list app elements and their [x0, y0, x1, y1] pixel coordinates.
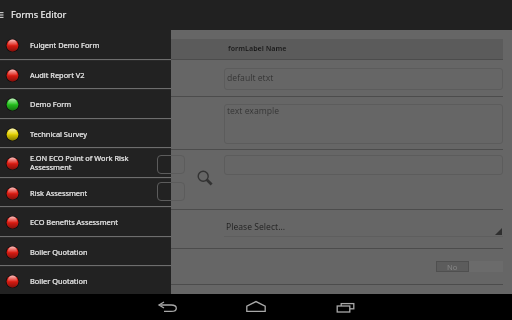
- staticText: default etxt: [227, 72, 274, 84]
- staticText: text example: [227, 105, 280, 117]
- button[interactable]: Technical Survey: [0, 119, 171, 149]
- button[interactable]: [224, 155, 503, 175]
- button[interactable]: Boiler Quotation: [0, 237, 171, 267]
- staticText: Audit Report V2: [30, 70, 85, 80]
- staticText: ECO Benefits Assessment: [30, 217, 118, 227]
- staticText: Fulgent Demo Form: [30, 40, 100, 50]
- staticText: No: [447, 262, 458, 272]
- button[interactable]: ECO Benefits Assessment: [0, 207, 171, 237]
- staticText: Boiler Quotation: [30, 247, 88, 257]
- staticText: Demo Form: [30, 99, 72, 109]
- button[interactable]: Home: [214, 294, 298, 320]
- staticText: formLabel Name: [228, 44, 287, 54]
- button[interactable]: Back: [124, 294, 208, 320]
- staticText: Boiler Quotation: [30, 276, 88, 286]
- button[interactable]: Recent apps: [304, 294, 388, 320]
- staticText: Please Select...: [226, 221, 286, 233]
- staticText: Technical Survey: [30, 129, 88, 139]
- button[interactable]: Risk Assessment: [0, 178, 171, 208]
- button[interactable]: Demo Form: [0, 89, 171, 119]
- button[interactable]: Boiler Quotation: [0, 266, 171, 296]
- button[interactable]: Search: [195, 167, 214, 186]
- button[interactable]: text example: [224, 104, 503, 144]
- button[interactable]: Please Select...: [224, 215, 503, 237]
- button[interactable]: No: [436, 261, 503, 272]
- button[interactable]: Audit Report V2: [0, 60, 171, 90]
- button[interactable]: Fulgent Demo Form: [0, 30, 171, 60]
- button[interactable]: default etxt: [224, 68, 503, 90]
- staticText: Risk Assessment: [30, 188, 88, 198]
- button[interactable]: E.ON ECO Point of Work Risk Assessment: [0, 148, 171, 178]
- staticText: Forms Editor: [11, 8, 67, 21]
- staticText: E.ON ECO Point of Work Risk Assessment: [30, 153, 129, 173]
- button[interactable]: Open navigation drawer: [0, 0, 5, 30]
